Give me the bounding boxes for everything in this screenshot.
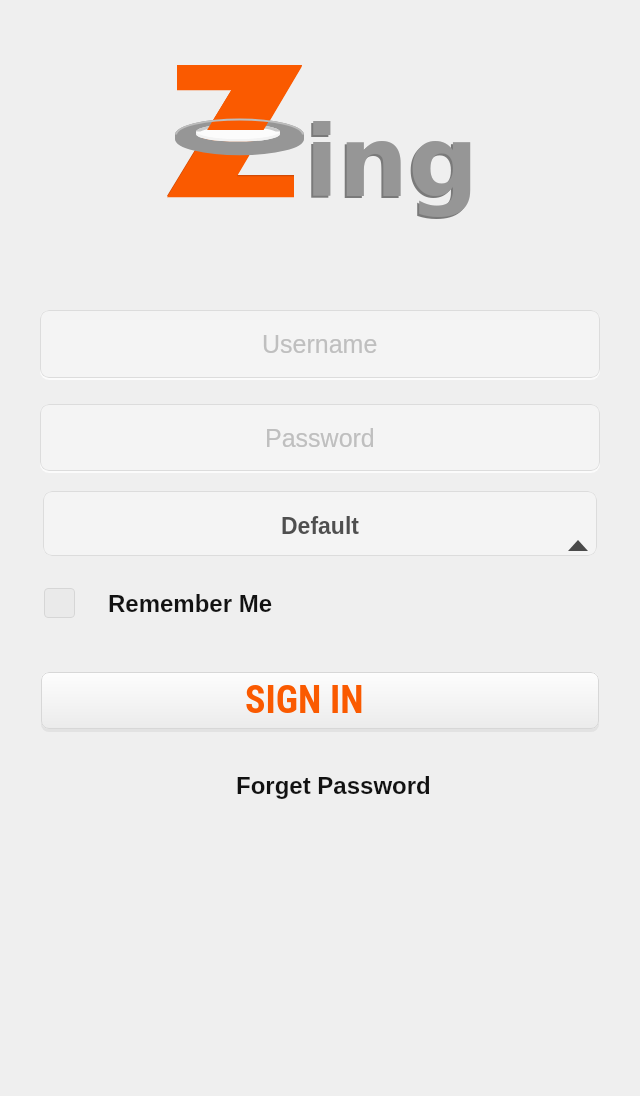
button[interactable]: Password [40, 404, 600, 471]
staticText: Password [265, 424, 375, 452]
button[interactable]: Remember Me [40, 584, 277, 622]
other: Zing logo [160, 52, 480, 222]
button[interactable]: Forget Password [228, 766, 439, 805]
staticText: ing [305, 105, 479, 219]
button[interactable]: Username [40, 310, 600, 378]
button[interactable]: Default [43, 491, 597, 556]
staticText: Username [262, 330, 378, 358]
staticText: Remember Me [108, 590, 273, 617]
staticText: ing [303, 107, 477, 221]
staticText: SIGN IN [245, 678, 364, 723]
staticText: Default [281, 513, 359, 539]
button[interactable]: SIGN IN [41, 672, 599, 729]
staticText: Forget Password [236, 772, 431, 799]
